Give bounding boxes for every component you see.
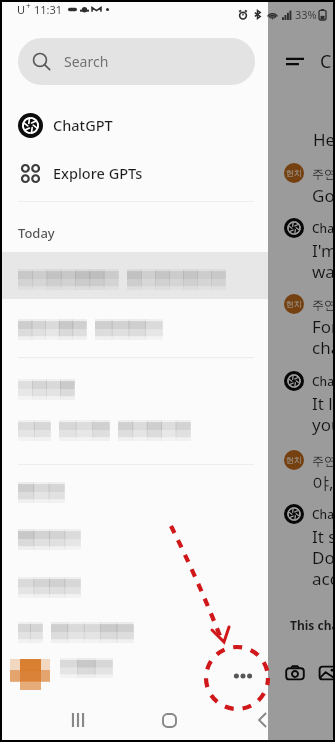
button[interactable]: Camera — [285, 663, 305, 683]
staticText: It looks like — [312, 392, 333, 415]
staticText: 주연 현치 — [312, 296, 333, 312]
staticText: 헌치 — [286, 455, 302, 465]
button[interactable]: Photos — [318, 663, 333, 683]
staticText: Today — [18, 224, 55, 242]
button[interactable]: Search — [18, 38, 255, 85]
staticText: ChatGPT 4o — [320, 49, 333, 74]
staticText: 주연 현치 — [312, 452, 333, 468]
button[interactable]: Recent apps — [55, 700, 100, 740]
staticText: ChatGPT — [312, 220, 333, 236]
staticText: It sounds tough today. — [312, 525, 333, 548]
staticText: U — [17, 2, 26, 17]
staticText: want to hear more? — [312, 260, 333, 283]
staticText: ChatGPT — [53, 115, 113, 135]
staticText: ChatGPT — [312, 506, 333, 522]
staticText: acceptance? — [312, 567, 333, 590]
staticText: 헌치 — [286, 168, 302, 178]
staticText: Hello! How can I help you? — [313, 128, 333, 151]
staticText: Do you want to talk — [312, 546, 333, 569]
button[interactable]: Explore GPTs — [2, 149, 268, 197]
staticText: ChatGPT — [312, 373, 333, 389]
staticText: 11:31 — [34, 2, 63, 17]
button[interactable]: Home — [147, 700, 192, 740]
staticText: you are busy today. — [312, 413, 333, 436]
button[interactable]: Back — [242, 700, 284, 740]
staticText: Explore GPTs — [53, 163, 143, 183]
staticText: + — [26, 2, 31, 11]
staticText: Search — [64, 52, 109, 71]
staticText: Good morning, how are you? — [312, 184, 333, 207]
staticText: 야, 속상해 오늘 — [312, 471, 333, 494]
staticText: This chat is temporary — [290, 617, 333, 633]
staticText: 33% — [295, 7, 317, 22]
button[interactable] — [2, 252, 268, 299]
staticText: 헌치 — [286, 299, 302, 309]
staticText: I'm fine, thank you. Do you — [312, 239, 333, 262]
button[interactable]: Open navigation drawer — [286, 53, 304, 71]
staticText: 주연 현치 — [312, 165, 333, 181]
staticText: For what it's worth, let's — [312, 315, 333, 338]
button[interactable]: More options — [227, 660, 259, 692]
button[interactable] — [2, 652, 268, 692]
button[interactable]: ChatGPT — [2, 101, 268, 149]
staticText: chat about daily plans. — [312, 336, 333, 359]
